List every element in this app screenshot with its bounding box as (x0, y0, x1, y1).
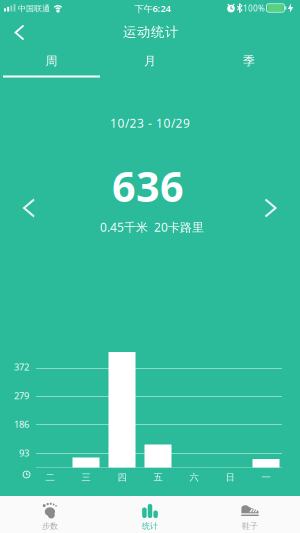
button[interactable]: Back (5, 15, 33, 49)
staticText: 279 (14, 389, 29, 402)
button[interactable]: Previous week (16, 191, 42, 224)
button[interactable]: Next week (257, 191, 283, 224)
staticText: 下午6:24 (134, 2, 170, 15)
staticText: 372 (14, 361, 29, 373)
staticText: 0.45千米 20卡路里 (100, 219, 204, 235)
staticText: 日 (225, 472, 234, 483)
staticText: 636 (112, 159, 184, 213)
staticText: 中国联通 (18, 4, 50, 13)
button[interactable]: 统计 (105, 496, 195, 533)
staticText: 周 (45, 54, 57, 68)
staticText: 四 (117, 472, 126, 483)
staticText: 季 (243, 54, 255, 68)
staticText: 186 (14, 418, 29, 430)
button[interactable]: 月 (100, 48, 200, 74)
button[interactable]: 季 (199, 48, 299, 74)
staticText: 统计 (142, 521, 158, 531)
staticText: 步数 (42, 521, 58, 531)
staticText: 六 (189, 472, 198, 483)
staticText: 100% (243, 3, 265, 14)
staticText: 一 (261, 472, 270, 483)
staticText: 10/23 - 10/29 (110, 115, 190, 131)
staticText: 五 (153, 472, 162, 483)
staticText: 三 (81, 472, 90, 483)
staticText: 二 (45, 472, 54, 483)
staticText: 93 (19, 447, 29, 459)
staticText: 鞋子 (242, 521, 258, 531)
button[interactable]: 步数 (5, 496, 95, 533)
staticText: 月 (144, 54, 156, 68)
button[interactable]: 鞋子 (205, 496, 295, 533)
button[interactable]: 周 (1, 48, 101, 74)
staticText: 运动统计 (123, 24, 178, 40)
